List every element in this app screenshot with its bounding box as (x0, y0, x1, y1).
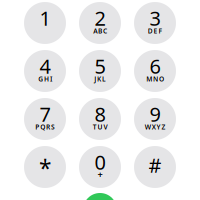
staticText (154, 162, 160, 170)
staticText: + (98, 156, 106, 168)
staticText: MNO (146, 66, 168, 74)
button[interactable]: 5 (79, 50, 121, 92)
staticText: WXYZ (145, 114, 169, 122)
button[interactable]: 4 (24, 50, 66, 92)
staticText: * (39, 153, 51, 183)
staticText: 6 (149, 53, 160, 79)
staticText: 0 (94, 149, 105, 175)
staticText: 1 (39, 5, 50, 31)
staticText: 8 (94, 101, 105, 127)
button[interactable]: 8 (79, 98, 121, 140)
staticText: PQRS (35, 114, 59, 122)
staticText: 5 (94, 53, 105, 79)
staticText: JKL (94, 66, 110, 74)
staticText: DEF (148, 18, 166, 26)
staticText: 9 (149, 101, 160, 127)
button[interactable]: # (134, 146, 176, 188)
button[interactable]: Call (83, 193, 117, 200)
button[interactable]: 0 (79, 146, 121, 188)
button[interactable]: * (24, 146, 66, 188)
staticText: GHI (38, 66, 56, 74)
staticText (44, 162, 50, 170)
button[interactable]: 7 (24, 98, 66, 140)
staticText: 3 (149, 5, 160, 31)
staticText: TUV (93, 114, 111, 122)
staticText: 4 (39, 53, 50, 79)
button[interactable]: 6 (134, 50, 176, 92)
staticText (44, 18, 50, 26)
staticText: ABC (93, 18, 111, 26)
staticText: 2 (94, 5, 105, 31)
staticText: # (148, 152, 161, 178)
button[interactable]: 2 (79, 2, 121, 44)
button[interactable]: 9 (134, 98, 176, 140)
button[interactable]: 1 (24, 2, 66, 44)
button[interactable]: 3 (134, 2, 176, 44)
staticText: 7 (39, 101, 50, 127)
